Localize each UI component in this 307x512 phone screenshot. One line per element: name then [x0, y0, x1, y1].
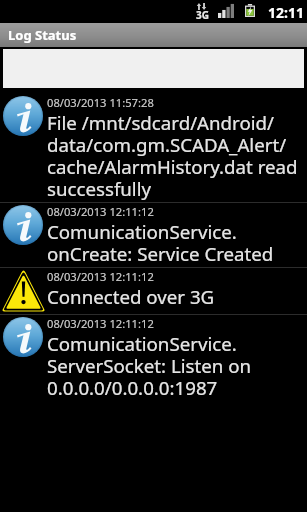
- other: Info: [3, 205, 43, 245]
- other: Warning: [1, 268, 46, 312]
- staticText: 08/03/2013 12:11:12: [47, 204, 154, 219]
- button[interactable]: Info: [0, 94, 307, 202]
- staticText: 08/03/2013 12:11:12: [47, 316, 154, 331]
- staticText: 3G: [196, 8, 209, 22]
- staticText: ComunicationService.​ServerSocket: Liste…: [47, 331, 307, 401]
- staticText: 08/03/2013 12:11:12: [47, 269, 154, 284]
- button[interactable]: Warning: [0, 268, 307, 314]
- button[interactable]: Info: [0, 203, 307, 267]
- staticText: Connected over 3G: [47, 284, 215, 309]
- staticText: File /mnt/sdcard/Android/data/com.gm.SCA…: [47, 110, 307, 202]
- other: Info: [3, 317, 43, 357]
- staticText: Log Status: [8, 26, 77, 44]
- staticText: ComunicationService.​onCreate: Service C…: [47, 219, 307, 267]
- staticText: 12:11: [268, 3, 304, 22]
- button[interactable]: Info: [0, 315, 307, 401]
- staticText: 08/03/2013 11:57:28: [47, 95, 154, 110]
- other: Info: [3, 96, 43, 136]
